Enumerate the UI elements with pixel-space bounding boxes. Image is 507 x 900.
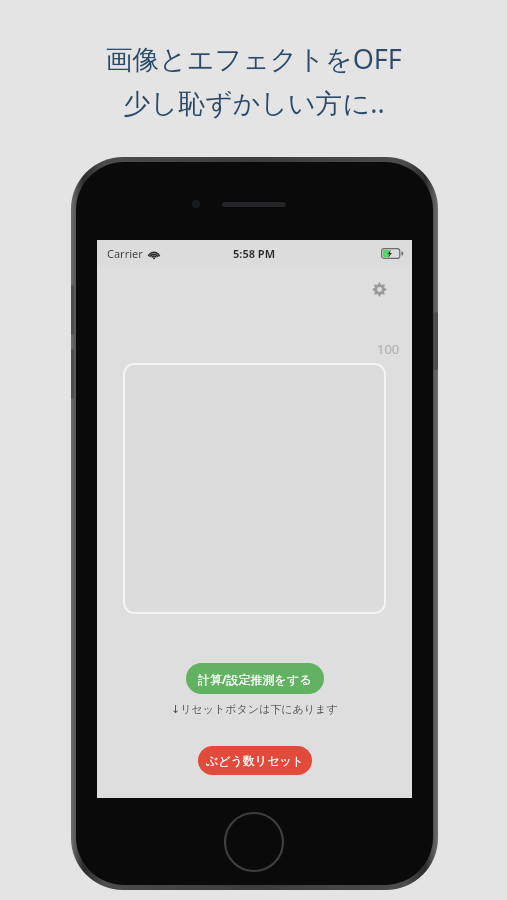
- button[interactable]: Settings: [366, 276, 392, 302]
- staticText: 少し恥ずかしい方に..: [123, 84, 385, 121]
- staticText: 100: [377, 340, 400, 358]
- staticText: 5:58 PM: [233, 246, 276, 261]
- other: Home: [223, 811, 285, 873]
- button[interactable]: 計算/設定推測をする: [186, 663, 324, 694]
- staticText: ↓リセットボタンは下にあります: [171, 702, 338, 716]
- staticText: 画像とエフェクトをOFF: [105, 40, 402, 77]
- staticText: 計算/設定推測をする: [198, 671, 312, 687]
- button[interactable]: [123, 363, 386, 614]
- staticText: Carrier: [107, 246, 143, 261]
- button[interactable]: ぶどう数リセット: [198, 746, 312, 775]
- staticText: ぶどう数リセット: [206, 753, 304, 768]
